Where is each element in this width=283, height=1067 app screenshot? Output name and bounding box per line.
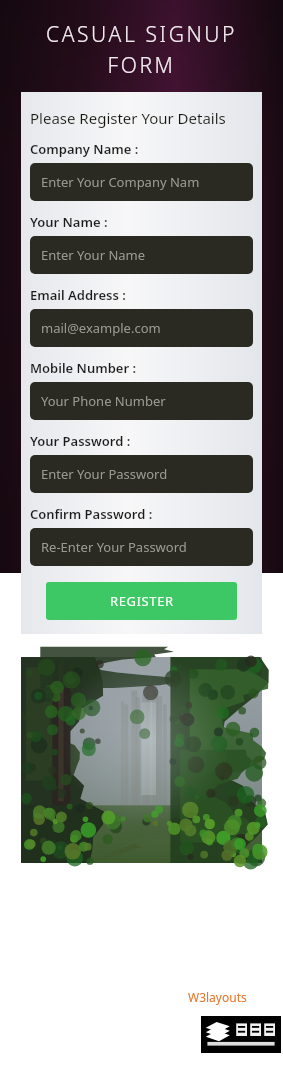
button[interactable]: Enter Your Password [30, 455, 253, 493]
staticText: Enter Your Name [41, 246, 146, 264]
staticText: Your Password : [30, 432, 131, 450]
button[interactable]: REGISTER [46, 582, 237, 620]
staticText: Company Name : [30, 140, 139, 158]
staticText: CASUAL SIGNUP FORM [8, 20, 275, 79]
staticText: Enter Your Password [41, 465, 168, 483]
staticText: Your Name : [30, 213, 108, 231]
staticText: Mobile Number : [30, 359, 137, 377]
staticText: Please Register Your Details [30, 108, 226, 128]
staticText: Email Address : [30, 286, 126, 304]
staticText: Re-Enter Your Password [41, 538, 187, 556]
staticText: mail@example.com [41, 319, 161, 337]
staticText: Confirm Password : [30, 505, 153, 523]
staticText: REGISTER [110, 592, 174, 610]
button[interactable]: mail@example.com [30, 309, 253, 347]
button[interactable]: Enter Your Company Nam [30, 163, 253, 201]
button[interactable]: Re-Enter Your Password [30, 528, 253, 566]
staticText: W3layouts [188, 989, 247, 1005]
staticText: Enter Your Company Nam [41, 173, 200, 191]
button[interactable]: Your Phone Number [30, 382, 253, 420]
staticText: Your Phone Number [41, 392, 166, 410]
button[interactable]: MobanWang logo [201, 1016, 281, 1053]
button[interactable]: Enter Your Name [30, 236, 253, 274]
